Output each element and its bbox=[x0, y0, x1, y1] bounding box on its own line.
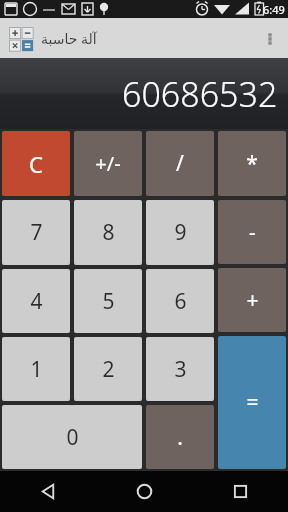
staticText: . bbox=[177, 423, 183, 452]
staticText: C bbox=[29, 149, 43, 179]
button[interactable]: - bbox=[218, 200, 286, 264]
staticText: 3 bbox=[174, 355, 187, 384]
button[interactable]: 2 bbox=[74, 337, 142, 401]
button[interactable]: = bbox=[218, 336, 286, 469]
button[interactable]: C bbox=[2, 131, 70, 196]
button[interactable]: Home bbox=[96, 471, 192, 512]
button[interactable]: 0 bbox=[2, 405, 142, 469]
staticText: 9 bbox=[174, 218, 187, 247]
button[interactable]: More options bbox=[252, 20, 288, 56]
button[interactable]: 5 bbox=[74, 269, 142, 333]
button[interactable]: + bbox=[218, 268, 286, 332]
button[interactable]: . bbox=[146, 405, 214, 469]
button[interactable]: 3 bbox=[146, 337, 214, 401]
button[interactable]: 6 bbox=[146, 269, 214, 333]
staticText: 6 bbox=[174, 287, 187, 316]
staticText: 1 bbox=[30, 355, 43, 384]
staticText: 0 bbox=[66, 423, 79, 452]
staticText: آلة حاسبة bbox=[41, 29, 97, 48]
button[interactable]: +/- bbox=[74, 131, 142, 196]
button[interactable]: 1 bbox=[2, 337, 70, 401]
staticText: 60686532 bbox=[122, 71, 278, 117]
staticText: 5 bbox=[102, 287, 115, 316]
button[interactable]: 7 bbox=[2, 200, 70, 265]
button[interactable]: * bbox=[218, 131, 286, 196]
button[interactable]: 9 bbox=[146, 200, 214, 265]
staticText: 4 bbox=[30, 287, 43, 316]
button[interactable]: 8 bbox=[74, 200, 142, 265]
button[interactable]: Back bbox=[0, 471, 96, 512]
staticText: 7 bbox=[30, 218, 43, 247]
staticText: 6:49 bbox=[263, 2, 285, 17]
staticText: + bbox=[246, 286, 259, 315]
staticText: 2 bbox=[102, 355, 115, 384]
staticText: = bbox=[246, 388, 259, 417]
button[interactable]: Recents bbox=[192, 471, 288, 512]
staticText: * bbox=[246, 149, 258, 178]
staticText: - bbox=[249, 218, 256, 247]
staticText: / bbox=[176, 149, 184, 178]
staticText: 8 bbox=[102, 218, 115, 247]
button[interactable]: / bbox=[146, 131, 214, 196]
button[interactable]: 4 bbox=[2, 269, 70, 333]
staticText: +/- bbox=[95, 150, 121, 177]
